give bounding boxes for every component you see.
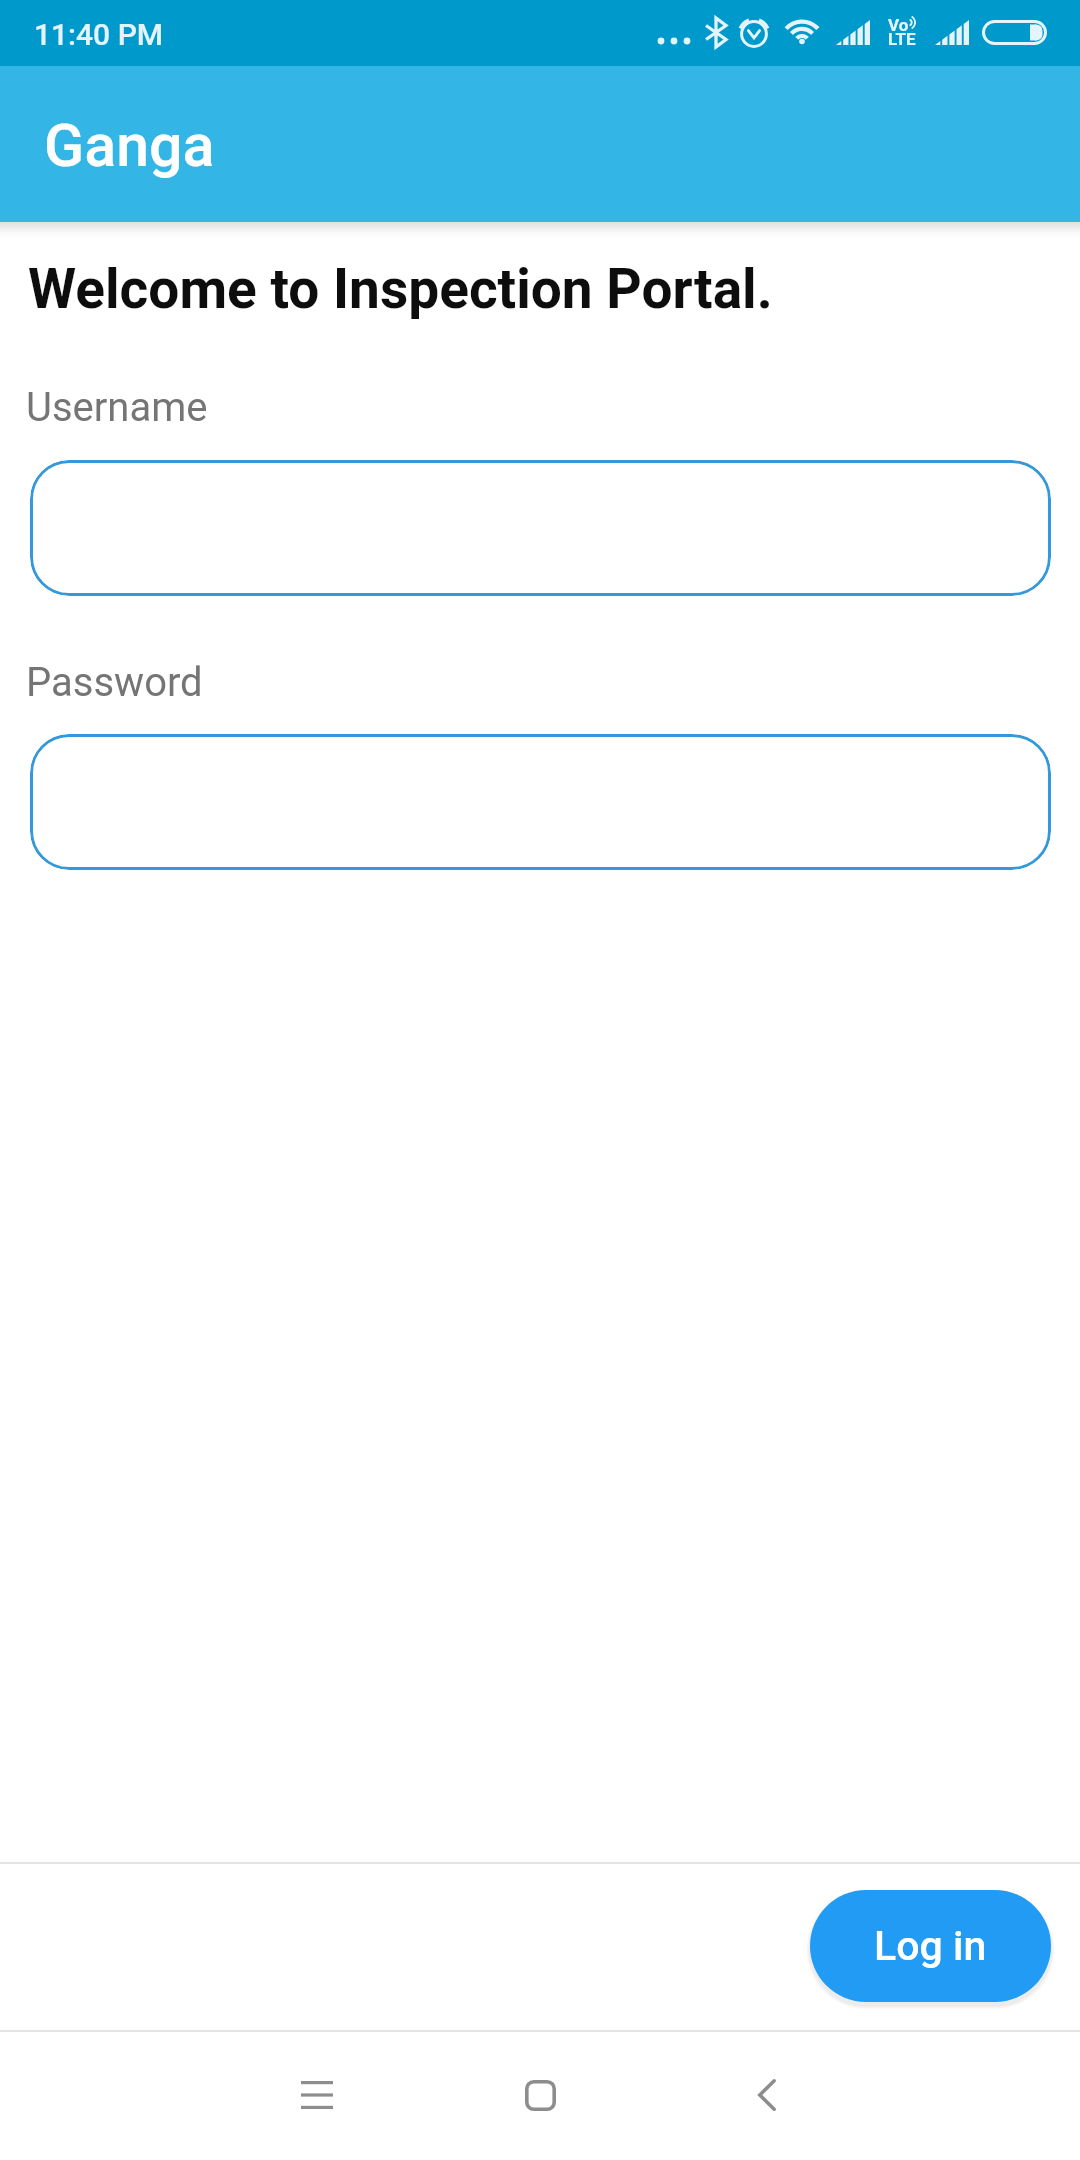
staticText: Ganga xyxy=(44,111,215,180)
button[interactable]: Back xyxy=(713,2041,821,2149)
staticText: 11:40 PM xyxy=(34,17,164,52)
button[interactable]: Home xyxy=(486,2041,594,2149)
staticText: Password xyxy=(26,659,203,706)
button[interactable]: Password input field xyxy=(30,734,1051,870)
button[interactable]: Recent apps xyxy=(263,2041,371,2149)
button[interactable]: Username input field xyxy=(30,460,1051,596)
staticText: Log in xyxy=(874,1922,987,1970)
staticText: Vo xyxy=(888,15,909,35)
button[interactable]: Log in xyxy=(810,1890,1051,2002)
staticText: Username xyxy=(26,384,208,431)
staticText: LTE xyxy=(888,29,916,49)
staticText: Welcome to Inspection Portal. xyxy=(28,257,773,321)
